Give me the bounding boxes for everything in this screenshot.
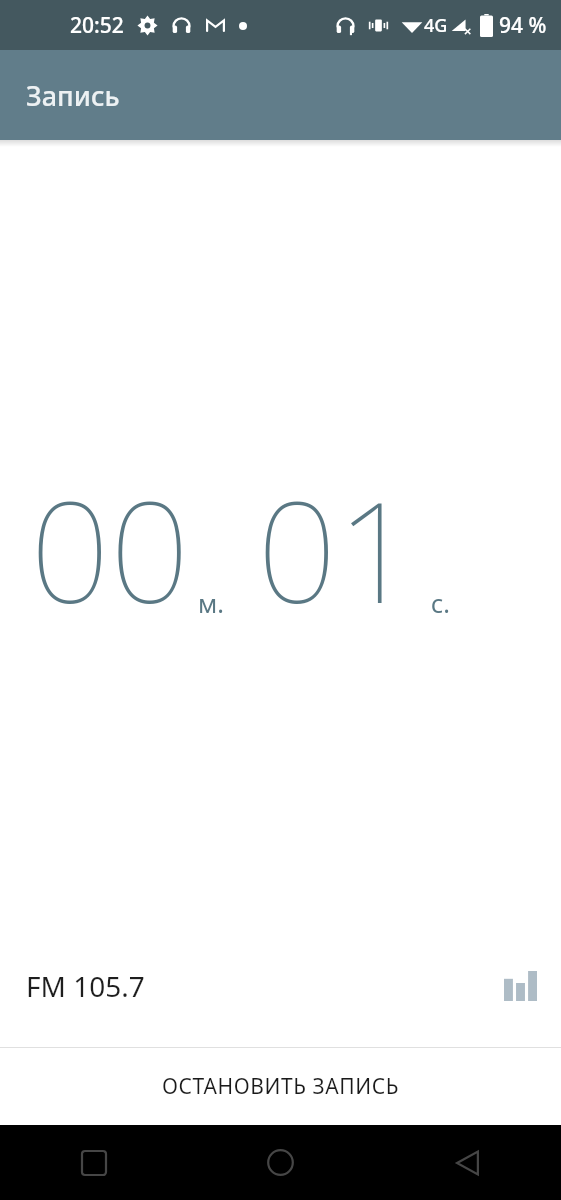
button[interactable]: Home	[187, 1125, 374, 1200]
button[interactable]: Back	[374, 1125, 561, 1200]
staticText: FM 105.7	[26, 967, 145, 1005]
staticText: 00	[30, 453, 190, 644]
staticText: 4G	[424, 13, 448, 38]
button[interactable]: ОСТАНОВИТЬ ЗАПИСЬ	[0, 1048, 561, 1125]
staticText: Запись	[26, 77, 120, 114]
staticText: с.	[431, 586, 451, 620]
button[interactable]: Recent apps	[0, 1125, 187, 1200]
staticText: 01	[257, 453, 417, 644]
staticText: ОСТАНОВИТЬ ЗАПИСЬ	[162, 1072, 400, 1101]
other: Signal strength	[504, 971, 537, 1001]
staticText: 20:52	[70, 11, 124, 40]
staticText: м.	[198, 586, 224, 620]
staticText: 94 %	[499, 11, 547, 40]
